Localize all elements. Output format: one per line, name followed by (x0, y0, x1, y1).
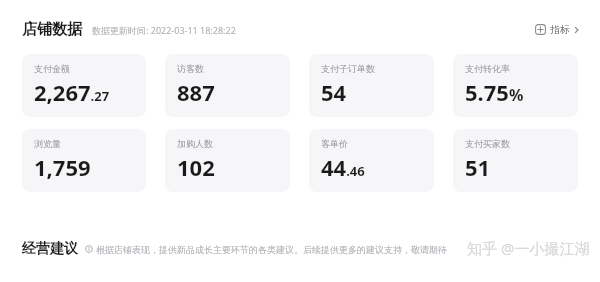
button[interactable]: 加购人数 (165, 129, 290, 192)
button[interactable]: 浏览量 (22, 129, 146, 192)
staticText: 887 (177, 77, 215, 107)
staticText: 支付买家数 (465, 138, 510, 149)
button[interactable]: 支付金额 (22, 54, 146, 117)
button[interactable]: 支付子订单数 (309, 54, 434, 117)
staticText: 指标 (550, 23, 570, 36)
staticText: 浏览量 (34, 138, 61, 149)
staticText: 支付金额 (34, 63, 70, 74)
button[interactable]: 指标 (533, 21, 582, 38)
staticText: 51 (465, 152, 491, 182)
staticText: 支付转化率 (465, 63, 510, 74)
staticText: 1,759 (34, 152, 91, 182)
staticText: 经营建议 (22, 240, 78, 258)
button[interactable]: 支付转化率 (453, 54, 578, 117)
staticText: 54 (321, 77, 347, 107)
staticText: 客单价 (321, 138, 348, 149)
staticText: 数据更新时间: 2022-03-11 18:28:22 (92, 24, 236, 36)
staticText: 44.46 (321, 152, 365, 182)
staticText: 访客数 (177, 63, 204, 74)
button[interactable]: 访客数 (165, 54, 290, 117)
staticText: 根据店铺表现，提供新品成长主要环节的各类建议。后续提供更多的建议支持，敬请期待 (96, 244, 447, 255)
staticText: 支付子订单数 (321, 63, 375, 74)
button[interactable]: 客单价 (309, 129, 434, 192)
staticText: 5.75% (465, 77, 524, 107)
staticText: 102 (177, 152, 215, 182)
staticText: 知乎 @一小撮江湖 (467, 238, 590, 258)
staticText: 2,267.27 (34, 77, 110, 107)
staticText: 加购人数 (177, 138, 213, 149)
staticText: 店铺数据 (22, 20, 82, 39)
button[interactable]: 支付买家数 (453, 129, 578, 192)
